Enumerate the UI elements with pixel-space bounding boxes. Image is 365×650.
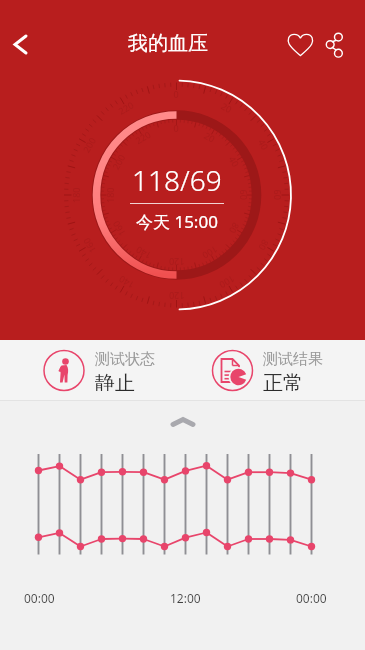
staticText: 118/69	[132, 161, 222, 199]
staticText: 我的血压	[128, 31, 208, 56]
staticText: 12:00	[170, 590, 201, 606]
button[interactable]: Favorite	[278, 22, 322, 66]
staticText: 静止	[95, 371, 135, 391]
button[interactable]: 测试状态	[44, 350, 184, 391]
staticText: 00:00	[296, 590, 327, 606]
staticText: 正常	[263, 371, 303, 391]
button[interactable]: Share	[313, 22, 357, 66]
staticText: 测试状态	[95, 350, 155, 369]
staticText: 今天 15:00	[136, 210, 218, 233]
staticText: 测试结果	[263, 350, 323, 369]
button[interactable]: Back	[0, 22, 44, 66]
staticText: 00:00	[24, 590, 55, 606]
button[interactable]: 测试结果	[212, 350, 352, 391]
button[interactable]: Collapse	[160, 408, 206, 436]
